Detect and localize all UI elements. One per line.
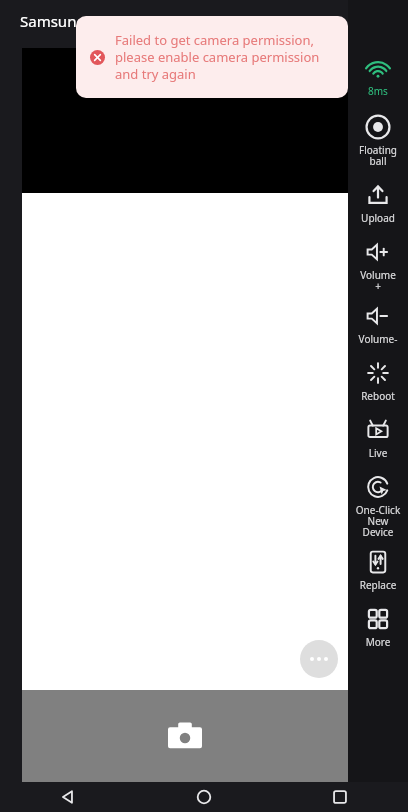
staticText: Reboot	[352, 389, 404, 403]
button[interactable]: Take photo	[161, 712, 209, 760]
staticText: More	[352, 635, 404, 649]
button[interactable]: Volume +	[348, 237, 408, 295]
staticText: Live	[352, 446, 404, 460]
staticText: 8ms	[368, 84, 388, 98]
button[interactable]: Reboot	[348, 358, 408, 405]
staticText: One-Click New Device	[352, 503, 404, 539]
staticText: Failed to get camera permission, please …	[115, 31, 334, 83]
button[interactable]: One-Click New Device	[348, 472, 408, 541]
staticText: Volume +	[352, 268, 404, 293]
button[interactable]: Floating ball	[348, 112, 408, 170]
button[interactable]: Recents	[272, 782, 408, 812]
button[interactable]: Live	[348, 415, 408, 462]
button[interactable]: Volume-	[348, 301, 408, 348]
button[interactable]: Back	[0, 782, 136, 812]
button[interactable]: Replace	[348, 547, 408, 594]
button[interactable]: Home	[136, 782, 272, 812]
staticText: Replace	[352, 578, 404, 592]
staticText: Upload	[352, 211, 404, 225]
button[interactable]: Upload	[348, 180, 408, 227]
staticText: Volume-	[352, 332, 404, 346]
button[interactable]: Failed to get camera permission, please …	[76, 16, 348, 98]
staticText: Floating ball	[352, 143, 404, 168]
button[interactable]: 8ms	[348, 56, 408, 98]
button[interactable]: More	[348, 604, 408, 651]
button[interactable]: More options	[300, 640, 338, 678]
staticText: Samsung	[20, 11, 86, 31]
